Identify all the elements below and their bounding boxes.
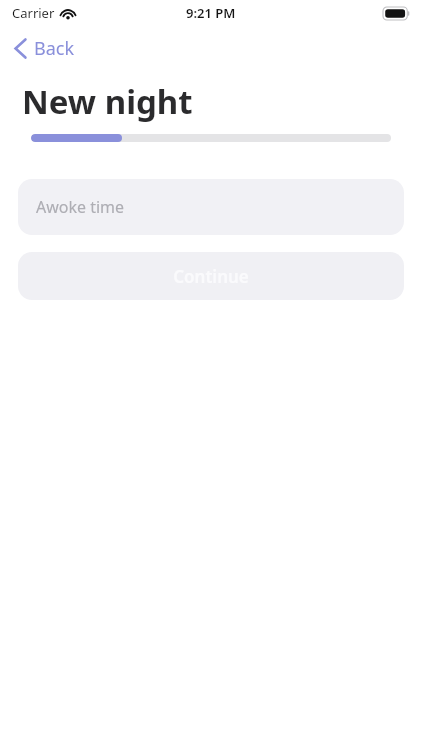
staticText: 9:21 PM (186, 4, 236, 22)
staticText: Back (34, 36, 75, 61)
staticText: Awoke time (36, 196, 125, 218)
button[interactable]: Back (10, 32, 79, 65)
button[interactable]: Awoke time (18, 179, 404, 235)
staticText: New night (22, 79, 193, 124)
staticText: Continue (173, 265, 249, 288)
staticText: Carrier (12, 4, 55, 22)
